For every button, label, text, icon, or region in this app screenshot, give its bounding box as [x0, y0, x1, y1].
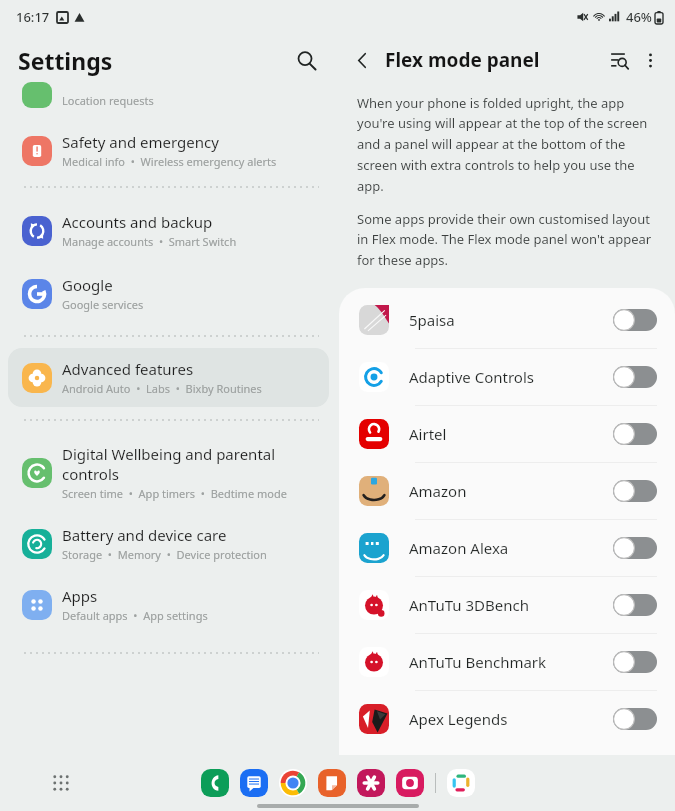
- button[interactable]: AnTuTu Benchmark: [339, 634, 675, 690]
- button[interactable]: App: [447, 769, 475, 797]
- staticText: Storage • Memory • Device protection: [62, 547, 267, 562]
- button[interactable]: Apps: [8, 575, 329, 634]
- staticText: Accounts and backup: [62, 212, 213, 232]
- button[interactable]: Battery and device care: [8, 514, 329, 573]
- staticText: Amazon: [409, 481, 613, 501]
- button[interactable]: All apps: [48, 770, 74, 796]
- staticText: Settings: [18, 45, 291, 76]
- button[interactable]: App: [240, 769, 268, 797]
- button[interactable]: Apex Legends: [339, 691, 675, 747]
- staticText: Digital Wellbeing and parental controls: [62, 444, 319, 484]
- button[interactable]: Location requests: [0, 86, 337, 108]
- button[interactable]: Toggle: [613, 480, 657, 502]
- staticText: Apps: [62, 586, 98, 606]
- staticText: Flex mode panel: [385, 47, 603, 73]
- button[interactable]: Amazon: [339, 463, 675, 519]
- button[interactable]: AnTuTu 3DBench: [339, 577, 675, 633]
- staticText: Battery and device care: [62, 525, 227, 545]
- staticText: Manage accounts • Smart Switch: [62, 234, 237, 249]
- button[interactable]: Safety and emergency: [8, 121, 329, 180]
- staticText: Adaptive Controls: [409, 367, 613, 387]
- button[interactable]: Accounts and backup: [8, 201, 329, 260]
- button[interactable]: App: [279, 769, 307, 797]
- staticText: Apex Legends: [409, 709, 613, 729]
- button[interactable]: Amazon Alexa: [339, 520, 675, 576]
- button[interactable]: 5paisa: [339, 292, 675, 348]
- staticText: Airtel: [409, 424, 613, 444]
- staticText: Safety and emergency: [62, 132, 219, 152]
- button[interactable]: Airtel: [339, 406, 675, 462]
- button[interactable]: App: [357, 769, 385, 797]
- staticText: Amazon Alexa: [409, 538, 613, 558]
- button[interactable]: Toggle: [613, 594, 657, 616]
- staticText: Medical info • Wireless emergency alerts: [62, 154, 277, 169]
- staticText: Screen time • App timers • Bedtime mode: [62, 486, 287, 501]
- button[interactable]: Toggle: [613, 537, 657, 559]
- staticText: Advanced features: [62, 359, 194, 379]
- button[interactable]: Digital Wellbeing and parental controls: [8, 433, 329, 512]
- button[interactable]: Back: [345, 43, 379, 77]
- staticText: 5paisa: [409, 310, 613, 330]
- staticText: Android Auto • Labs • Bixby Routines: [62, 381, 262, 396]
- staticText: Google services: [62, 297, 144, 312]
- button[interactable]: App: [318, 769, 346, 797]
- button[interactable]: Toggle: [613, 423, 657, 445]
- button[interactable]: Search settings: [603, 44, 635, 76]
- button[interactable]: Advanced features: [8, 348, 329, 407]
- staticText: 16:17: [16, 8, 50, 26]
- button[interactable]: Toggle: [613, 366, 657, 388]
- staticText: Google: [62, 275, 113, 295]
- button[interactable]: Toggle: [613, 651, 657, 673]
- staticText: AnTuTu Benchmark: [409, 652, 613, 672]
- staticText: When your phone is folded upright, the a…: [357, 94, 661, 195]
- staticText: 46%: [626, 8, 652, 26]
- button[interactable]: Adaptive Controls: [339, 349, 675, 405]
- staticText: AnTuTu 3DBench: [409, 595, 613, 615]
- staticText: Default apps • App settings: [62, 608, 208, 623]
- staticText: Location requests: [62, 93, 154, 108]
- button[interactable]: Search: [291, 45, 321, 75]
- button[interactable]: App: [396, 769, 424, 797]
- button[interactable]: Toggle: [613, 708, 657, 730]
- button[interactable]: More options: [635, 45, 665, 75]
- staticText: Some apps provide their own customised l…: [357, 210, 661, 269]
- button[interactable]: Google: [8, 264, 329, 323]
- button[interactable]: App: [201, 769, 229, 797]
- button[interactable]: Toggle: [613, 309, 657, 331]
